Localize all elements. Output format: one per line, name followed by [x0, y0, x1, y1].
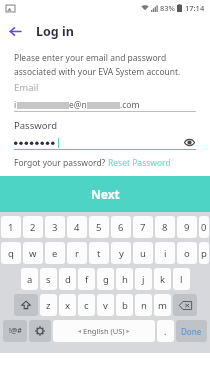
button[interactable]: s: [40, 268, 57, 290]
button[interactable]: q: [1, 242, 21, 264]
staticText: e: [52, 247, 58, 260]
button[interactable]: .: [157, 320, 174, 342]
staticText: Done: [181, 326, 202, 337]
staticText: .: [164, 325, 167, 337]
button[interactable]: p: [199, 242, 209, 264]
button[interactable]: f: [78, 268, 95, 290]
button[interactable]: k: [154, 268, 171, 290]
staticText: 83%: [160, 3, 175, 13]
staticText: o: [184, 247, 190, 260]
staticText: English (US): [83, 326, 125, 336]
staticText: Password: [14, 119, 57, 132]
button[interactable]: d: [59, 268, 76, 290]
button[interactable]: 8: [155, 216, 175, 238]
staticText: i: [14, 99, 17, 111]
staticText: u: [140, 247, 146, 260]
button[interactable]: 2: [23, 216, 43, 238]
staticText: Email: [14, 81, 39, 94]
staticText: 3: [52, 221, 58, 234]
button[interactable]: n: [135, 294, 152, 316]
staticText: m: [158, 299, 167, 312]
staticText: Reset Password: [108, 157, 171, 169]
staticText: 5: [96, 221, 102, 234]
button[interactable]: l: [173, 268, 190, 290]
staticText: r: [75, 247, 79, 260]
staticText: s: [46, 273, 51, 286]
staticText: i: [164, 247, 167, 260]
staticText: 2: [30, 221, 36, 234]
staticText: Log in: [36, 23, 74, 40]
staticText: w: [29, 247, 37, 260]
button[interactable]: Settings: [29, 320, 51, 342]
button[interactable]: Key: [173, 294, 197, 316]
button[interactable]: !@#: [3, 320, 27, 342]
staticText: 4: [74, 221, 80, 234]
button[interactable]: 4: [67, 216, 87, 238]
button[interactable]: r: [67, 242, 87, 264]
staticText: h: [122, 273, 128, 286]
button[interactable]: v: [97, 294, 114, 316]
staticText: Please enter your email and password: [14, 52, 167, 64]
staticText: 7: [140, 221, 146, 234]
button[interactable]: t: [89, 242, 109, 264]
button[interactable]: 1: [1, 216, 21, 238]
staticText: t: [97, 247, 101, 260]
button[interactable]: h: [116, 268, 133, 290]
staticText: d: [65, 273, 71, 286]
staticText: b: [122, 299, 128, 312]
button[interactable]: 0: [199, 216, 209, 238]
staticText: Next: [91, 186, 120, 202]
button[interactable]: e: [45, 242, 65, 264]
button[interactable]: Show password: [14, 136, 196, 149]
staticText: !@#: [9, 326, 22, 336]
button[interactable]: z: [40, 294, 57, 316]
staticText: n: [141, 299, 147, 312]
staticText: associated with your EVA System account.: [14, 66, 181, 78]
staticText: .com: [120, 99, 140, 111]
button[interactable]: 6: [111, 216, 131, 238]
staticText: k: [160, 273, 166, 286]
button[interactable]: a: [21, 268, 38, 290]
staticText: f: [85, 273, 89, 286]
button[interactable]: Done: [176, 320, 207, 342]
button[interactable]: 9: [177, 216, 197, 238]
button[interactable]: Next: [0, 176, 210, 212]
staticText: p: [201, 247, 207, 260]
staticText: 0: [201, 221, 207, 234]
staticText: e@n: [69, 99, 87, 111]
staticText: v: [103, 299, 108, 312]
button[interactable]: ◂: [53, 320, 155, 342]
staticText: 9: [184, 221, 190, 234]
button[interactable]: Show password: [182, 136, 196, 149]
button[interactable]: x: [59, 294, 76, 316]
button[interactable]: 3: [45, 216, 65, 238]
button[interactable]: Key: [14, 294, 38, 316]
button[interactable]: u: [133, 242, 153, 264]
staticText: g: [103, 273, 109, 286]
staticText: z: [46, 299, 51, 312]
button[interactable]: b: [116, 294, 133, 316]
button[interactable]: g: [97, 268, 114, 290]
button[interactable]: m: [154, 294, 171, 316]
button[interactable]: c: [78, 294, 95, 316]
staticText: q: [8, 247, 14, 260]
staticText: Forgot your password?: [14, 157, 108, 169]
button[interactable]: 7: [133, 216, 153, 238]
button[interactable]: i: [155, 242, 175, 264]
button[interactable]: Reset Password: [108, 157, 171, 169]
button[interactable]: w: [23, 242, 43, 264]
button[interactable]: i: [14, 98, 196, 111]
staticText: x: [65, 299, 71, 312]
staticText: 17:14: [185, 3, 205, 13]
staticText: l: [180, 273, 183, 286]
staticText: j: [142, 273, 145, 286]
staticText: 8: [162, 221, 168, 234]
staticText: ▸: [125, 327, 130, 335]
staticText: 6: [118, 221, 124, 234]
button[interactable]: y: [111, 242, 131, 264]
button[interactable]: o: [177, 242, 197, 264]
button[interactable]: j: [135, 268, 152, 290]
button[interactable]: 5: [89, 216, 109, 238]
staticText: a: [27, 273, 33, 286]
button[interactable]: Back: [0, 16, 30, 46]
